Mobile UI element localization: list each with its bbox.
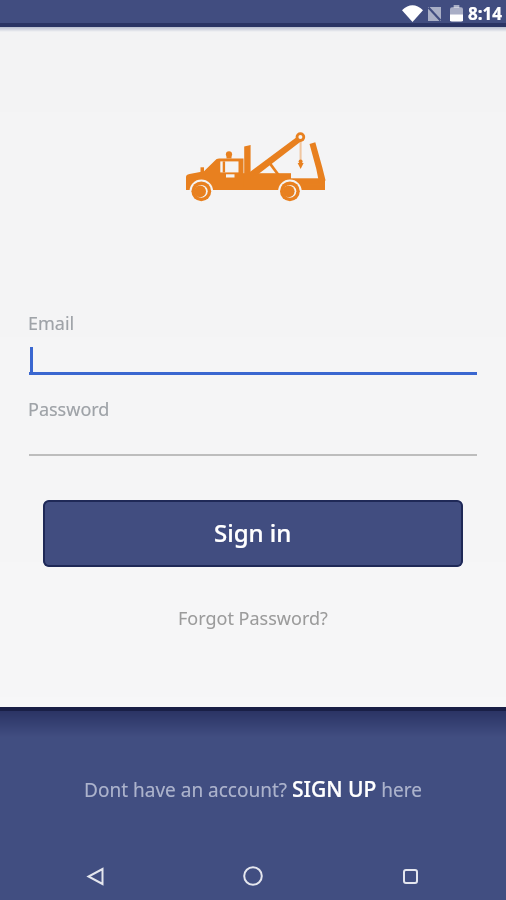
button[interactable] (403, 869, 418, 884)
button[interactable]: Forgot Password? (178, 606, 328, 631)
staticText: 8:14 (468, 2, 502, 25)
button[interactable]: Dont have an account? SIGN UP here (84, 775, 422, 804)
staticText: Forgot Password? (178, 606, 328, 631)
button[interactable] (28, 340, 478, 375)
button[interactable] (243, 866, 263, 886)
staticText: Password (28, 397, 110, 422)
button[interactable]: Sign in (43, 500, 463, 567)
staticText: Dont have an account? SIGN UP here (84, 775, 422, 804)
staticText: Email (28, 311, 75, 336)
button[interactable] (87, 868, 104, 885)
staticText: Sign in (214, 516, 292, 549)
button[interactable] (28, 425, 478, 456)
